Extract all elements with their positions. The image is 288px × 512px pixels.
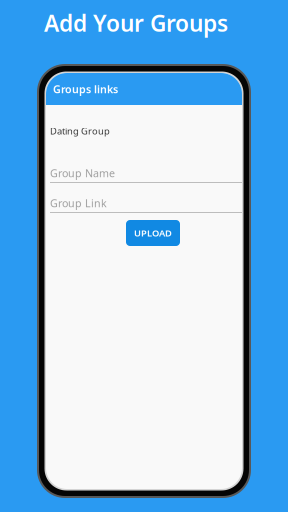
staticText: Group Name [50, 166, 115, 180]
staticText: Group Link [50, 196, 107, 210]
button[interactable]: Group Link [50, 196, 243, 213]
staticText: Groups links [53, 82, 118, 96]
staticText: UPLOAD [134, 227, 172, 239]
staticText: Add Your Groups [44, 8, 228, 38]
button[interactable]: Dating Group [50, 122, 242, 140]
button[interactable]: UPLOAD [126, 220, 180, 246]
button[interactable]: Group Name [50, 166, 243, 183]
staticText: Dating Group [50, 125, 110, 137]
